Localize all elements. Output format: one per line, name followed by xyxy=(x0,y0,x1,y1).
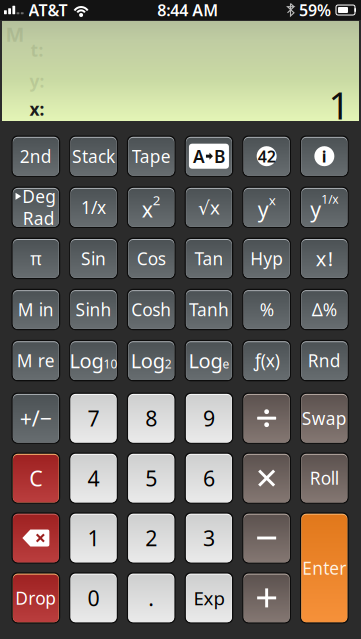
button[interactable]: Exp xyxy=(185,572,233,623)
button[interactable]: 2 xyxy=(127,512,176,564)
staticText: Swap xyxy=(302,407,347,430)
staticText: t: xyxy=(30,38,43,61)
staticText: 2nd xyxy=(20,145,52,168)
staticText: . xyxy=(148,584,154,612)
staticText: Log xyxy=(131,347,165,374)
staticText: Sin xyxy=(81,247,106,270)
button[interactable]: 5 xyxy=(127,452,176,504)
staticText: C xyxy=(29,464,42,492)
staticText: 9 xyxy=(203,404,215,432)
staticText: x xyxy=(269,191,276,209)
button[interactable]: Loge xyxy=(185,340,233,381)
button[interactable]: Multiply xyxy=(242,452,291,504)
button[interactable]: Stack xyxy=(69,135,118,177)
button[interactable]: M re xyxy=(11,340,60,381)
button[interactable]: Divide xyxy=(242,393,291,444)
button[interactable]: Factorial xyxy=(300,238,349,279)
button[interactable]: Minus xyxy=(242,512,291,564)
staticText: 2 xyxy=(165,356,172,372)
staticText: Stack xyxy=(72,145,115,168)
button[interactable]: Deg Rad xyxy=(11,187,60,228)
staticText: Enter xyxy=(302,556,346,579)
staticText: Cos xyxy=(137,247,166,270)
button[interactable]: 1 xyxy=(69,512,118,564)
staticText: y: xyxy=(29,69,44,92)
button[interactable]: Roll xyxy=(300,452,349,504)
staticText: ! xyxy=(328,245,333,272)
staticText: 1/x xyxy=(81,196,106,219)
button[interactable]: C xyxy=(11,452,60,504)
button[interactable]: 2nd xyxy=(11,135,60,177)
button[interactable]: Enter xyxy=(300,512,349,623)
button[interactable]: 8 xyxy=(127,393,176,444)
staticText: M xyxy=(5,21,24,47)
staticText: Drop xyxy=(15,586,56,609)
button[interactable]: 3 xyxy=(185,512,233,564)
button[interactable]: Plus xyxy=(242,572,291,623)
staticText: i xyxy=(322,146,327,167)
button[interactable]: Info xyxy=(300,135,349,177)
button[interactable]: 9 xyxy=(185,393,233,444)
button[interactable]: y1/x xyxy=(300,187,349,228)
staticText: √x xyxy=(198,195,220,220)
button[interactable]: . xyxy=(127,572,176,623)
button[interactable]: Tape xyxy=(127,135,176,177)
button[interactable]: x2 xyxy=(127,187,176,228)
staticText: 8:44 AM xyxy=(157,0,218,21)
staticText: 7 xyxy=(88,404,100,432)
button[interactable]: π xyxy=(11,238,60,279)
button[interactable]: Swap xyxy=(300,393,349,444)
staticText: 42 xyxy=(258,146,276,167)
staticText: y xyxy=(258,195,269,223)
staticText: x xyxy=(316,245,327,272)
staticText: 3 xyxy=(203,524,215,552)
button[interactable]: 42 xyxy=(242,135,291,177)
button[interactable]: 0 xyxy=(69,572,118,623)
button[interactable]: Sinh xyxy=(69,289,118,330)
button[interactable]: Log2 xyxy=(127,340,176,381)
staticText: Tape xyxy=(132,145,171,168)
button[interactable]: % xyxy=(242,289,291,330)
button[interactable]: Tan xyxy=(185,238,233,279)
button[interactable]: 6 xyxy=(185,452,233,504)
staticText: M re xyxy=(17,349,55,372)
staticText: Cosh xyxy=(131,298,171,321)
button[interactable]: yx xyxy=(242,187,291,228)
button[interactable]: Drop xyxy=(11,572,60,623)
button[interactable]: Δ% xyxy=(300,289,349,330)
button[interactable]: M in xyxy=(11,289,60,330)
button[interactable]: Sin xyxy=(69,238,118,279)
button[interactable]: +/− xyxy=(11,393,60,444)
staticText: Sinh xyxy=(76,298,112,321)
button[interactable]: Log10 xyxy=(69,340,118,381)
button[interactable]: √x xyxy=(185,187,233,228)
button[interactable]: Tanh xyxy=(185,289,233,330)
staticText: 1 xyxy=(328,80,349,130)
button[interactable]: Hyp xyxy=(242,238,291,279)
staticText: Log xyxy=(70,347,104,374)
button[interactable]: Rnd xyxy=(300,340,349,381)
staticText: +/− xyxy=(20,404,52,432)
button[interactable]: A to B xyxy=(185,135,233,177)
staticText: Deg xyxy=(22,185,56,208)
staticText: 5 xyxy=(145,464,157,492)
staticText: ƒ(x) xyxy=(254,349,280,372)
button[interactable]: Delete xyxy=(11,512,60,564)
button[interactable]: 7 xyxy=(69,393,118,444)
staticText: 59% xyxy=(299,0,331,21)
staticText: 1 xyxy=(88,524,100,552)
staticText: 6 xyxy=(203,464,215,492)
staticText: x xyxy=(142,195,153,223)
staticText: 0 xyxy=(88,584,100,612)
button[interactable]: Cosh xyxy=(127,289,176,330)
button[interactable]: 1/x xyxy=(69,187,118,228)
button[interactable]: 4 xyxy=(69,452,118,504)
staticText: 1/x xyxy=(321,191,338,207)
staticText: 10 xyxy=(104,356,118,372)
staticText: 8 xyxy=(145,404,157,432)
button[interactable]: Cos xyxy=(127,238,176,279)
staticText: 2 xyxy=(153,191,161,209)
staticText: % xyxy=(260,298,274,321)
staticText: x: xyxy=(29,97,44,120)
button[interactable]: ƒ(x) xyxy=(242,340,291,381)
